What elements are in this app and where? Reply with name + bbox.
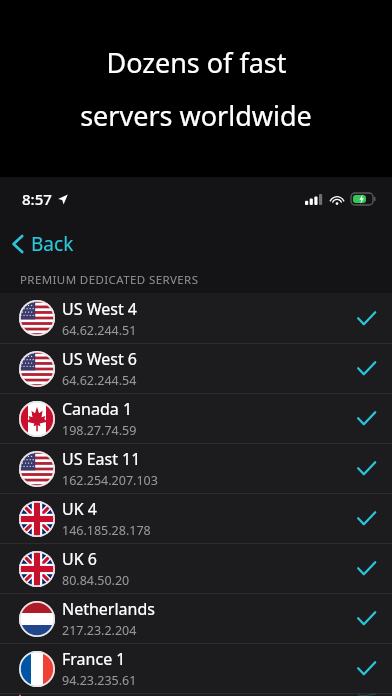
button[interactable]: UK 6 — [0, 544, 392, 593]
staticText: Dozens of fast — [106, 44, 287, 81]
staticText: 146.185.28.178 — [62, 522, 151, 539]
staticText: 94.23.235.61 — [62, 672, 137, 689]
staticText: servers worldwide — [80, 97, 312, 134]
staticText: 162.254.207.103 — [62, 472, 158, 489]
staticText: 80.84.50.20 — [62, 572, 130, 589]
staticText: 8:57 — [22, 189, 52, 209]
staticText: Canada 1 — [62, 398, 133, 420]
button[interactable]: Back — [0, 221, 392, 267]
staticText: US West 4 — [62, 298, 137, 320]
button[interactable]: UK 4 — [0, 494, 392, 543]
button[interactable]: Netherlands — [0, 594, 392, 643]
button[interactable]: Germany — [0, 694, 392, 696]
button[interactable]: US East 11 — [0, 444, 392, 493]
staticText: US East 11 — [62, 448, 141, 470]
staticText: 217.23.2.204 — [62, 622, 137, 639]
staticText: US West 6 — [62, 348, 137, 370]
button[interactable]: US West 4 — [0, 293, 392, 343]
button[interactable]: Canada 1 — [0, 394, 392, 443]
button[interactable]: France 1 — [0, 644, 392, 693]
staticText: Back — [31, 231, 74, 257]
staticText: 64.62.244.54 — [62, 372, 137, 389]
staticText: 198.27.74.59 — [62, 422, 137, 439]
staticText: UK 6 — [62, 548, 97, 570]
staticText: 64.62.244.51 — [62, 322, 137, 339]
button[interactable]: US West 6 — [0, 344, 392, 393]
staticText: France 1 — [62, 648, 126, 670]
staticText: UK 4 — [62, 498, 97, 520]
staticText: Netherlands — [62, 598, 155, 620]
staticText: PREMIUM DEDICATED SERVERS — [20, 272, 199, 288]
